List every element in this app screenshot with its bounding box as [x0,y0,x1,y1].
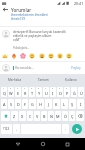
staticText: 2 [10,87,12,90]
button[interactable]: 2 [8,87,14,97]
button[interactable]: X [19,111,26,121]
button[interactable]: 5 [29,87,35,97]
button[interactable]: Ö [62,111,68,121]
button[interactable]: Back [12,138,24,150]
staticText: U [45,91,48,96]
staticText: R [24,91,27,96]
button[interactable]: A [1,99,7,109]
staticText: 7 [45,87,47,90]
staticText: V [36,114,39,119]
button[interactable]: , [13,124,20,134]
button[interactable]: Smiley [66,53,72,59]
button[interactable]: Ü [78,87,84,97]
staticText: 4 [24,87,26,90]
staticText: denizperifi Bunuzsel unyuk kazandik [13,30,66,34]
staticText: N [50,114,53,119]
staticText: , [16,127,17,131]
button[interactable]: K [53,99,60,109]
staticText: Y [38,91,41,96]
staticText: Z [13,114,16,119]
staticText: Psikolojisini... [13,46,30,50]
button[interactable]: 0 [64,87,70,97]
button[interactable]: V [34,111,40,121]
staticText: 0 [66,87,68,90]
staticText: ?123 [3,127,10,131]
button[interactable]: Home [37,138,49,150]
staticText: B [43,114,46,119]
staticText: 6 [38,87,40,90]
button[interactable]: Smiley [29,53,35,59]
staticText: Ö [64,114,67,119]
button[interactable]: Ç [69,111,75,121]
button[interactable]: B [41,111,47,121]
button[interactable]: F [22,99,28,109]
button[interactable]: Smiley [39,53,45,59]
button[interactable]: Back [0,6,11,13]
staticText: Ü [80,91,83,96]
button[interactable]: M [55,111,61,121]
staticText: X [21,114,24,119]
button[interactable]: 9 [57,87,63,97]
button[interactable]: D [15,99,21,109]
button[interactable]: Tamam [29,74,57,86]
staticText: #memleketimin #renkleri [11,13,48,17]
button[interactable]: Ş [69,99,76,109]
staticText: Ç [71,114,74,119]
staticText: G [31,102,34,107]
button[interactable]: 3 [15,87,21,97]
staticText: E [17,91,20,96]
button[interactable]: Fire [11,53,17,59]
button[interactable]: C [27,111,33,121]
staticText: I [80,102,82,107]
staticText: J [48,102,50,107]
staticText: F [24,102,27,107]
button[interactable]: 7 [43,87,49,97]
staticText: K [55,102,58,107]
staticText: Yorum ekle... [15,66,69,70]
button[interactable]: S [8,99,14,109]
button[interactable]: 8 [50,87,56,97]
button[interactable]: J [45,99,52,109]
button[interactable]: ?123 [1,124,12,134]
staticText: #insle129 [11,17,26,21]
button[interactable]: Ğ [71,87,77,97]
staticText: M [56,114,60,119]
staticText: L [63,102,66,107]
staticText: Kullanıcı [65,78,78,82]
button[interactable]: Send [72,124,82,134]
button[interactable]: Backspace [76,111,84,121]
staticText: Q [3,91,6,96]
staticText: Ş [71,102,74,107]
staticText: C [29,114,32,119]
button[interactable]: Shift [1,111,10,121]
staticText: I [52,91,54,96]
button[interactable]: Kullanıcı [57,74,85,86]
button[interactable]: Smiley [57,53,63,59]
staticText: D [17,102,20,107]
button[interactable]: Paylaş [69,65,83,71]
staticText: 3 [17,87,19,90]
staticText: Yorumlar [11,7,32,13]
button[interactable]: 1 [1,87,7,97]
button[interactable]: . [62,124,69,134]
button[interactable]: N [48,111,54,121]
button[interactable]: Blossom [20,53,26,59]
staticText: H [39,102,42,107]
button[interactable]: I [77,99,84,109]
staticText: W [9,91,13,96]
button[interactable]: H [37,99,44,109]
button[interactable]: Smiley [48,53,54,59]
button[interactable]: 6 [36,87,42,97]
button[interactable]: L [61,99,68,109]
staticText: 20:41 [74,1,84,6]
button[interactable]: Recent apps [61,138,73,150]
staticText: P [66,91,69,96]
button[interactable]: G [29,99,36,109]
button[interactable]: Crown [2,53,8,59]
button[interactable]: 4 [22,87,28,97]
staticText: O [59,91,62,96]
button[interactable]: Z [11,111,18,121]
staticText: Tamam [38,78,49,82]
button[interactable]: Merhaba [0,74,29,86]
